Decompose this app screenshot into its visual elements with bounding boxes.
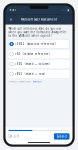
staticText: Microsoft Excel Assessment bbox=[21, 18, 57, 21]
staticText: =B$2 (mixed — row) bbox=[15, 72, 45, 76]
button[interactable]: =B$2 (mixed — row) bbox=[8, 70, 69, 78]
staticText: Give feedback bbox=[32, 81, 42, 83]
staticText: 9:41 bbox=[9, 8, 16, 12]
staticText: Which cell reference style do you use wh… bbox=[8, 27, 66, 37]
staticText: =$B2 (mixed — column) bbox=[15, 62, 50, 66]
staticText: Something wrong with this question? bbox=[8, 81, 31, 83]
staticText: =B2 (relative reference) bbox=[15, 52, 50, 56]
button[interactable]: =B2 (relative reference) bbox=[8, 50, 69, 58]
button[interactable]: =$B$2 (absolute reference) bbox=[8, 40, 69, 48]
button[interactable]: Submit bbox=[54, 133, 69, 140]
staticText: Submit bbox=[57, 135, 67, 138]
button[interactable]: =$B2 (mixed — column) bbox=[8, 60, 69, 68]
staticText: ✕ bbox=[9, 17, 12, 22]
staticText: =$B$2 (absolute reference) bbox=[15, 42, 56, 46]
button[interactable]: Give feedback bbox=[32, 81, 42, 83]
staticText: ◦◦◦ ▮ bbox=[60, 8, 68, 11]
button[interactable]: Close assessment bbox=[8, 16, 14, 23]
staticText: Q4 of 8 bbox=[8, 135, 19, 138]
